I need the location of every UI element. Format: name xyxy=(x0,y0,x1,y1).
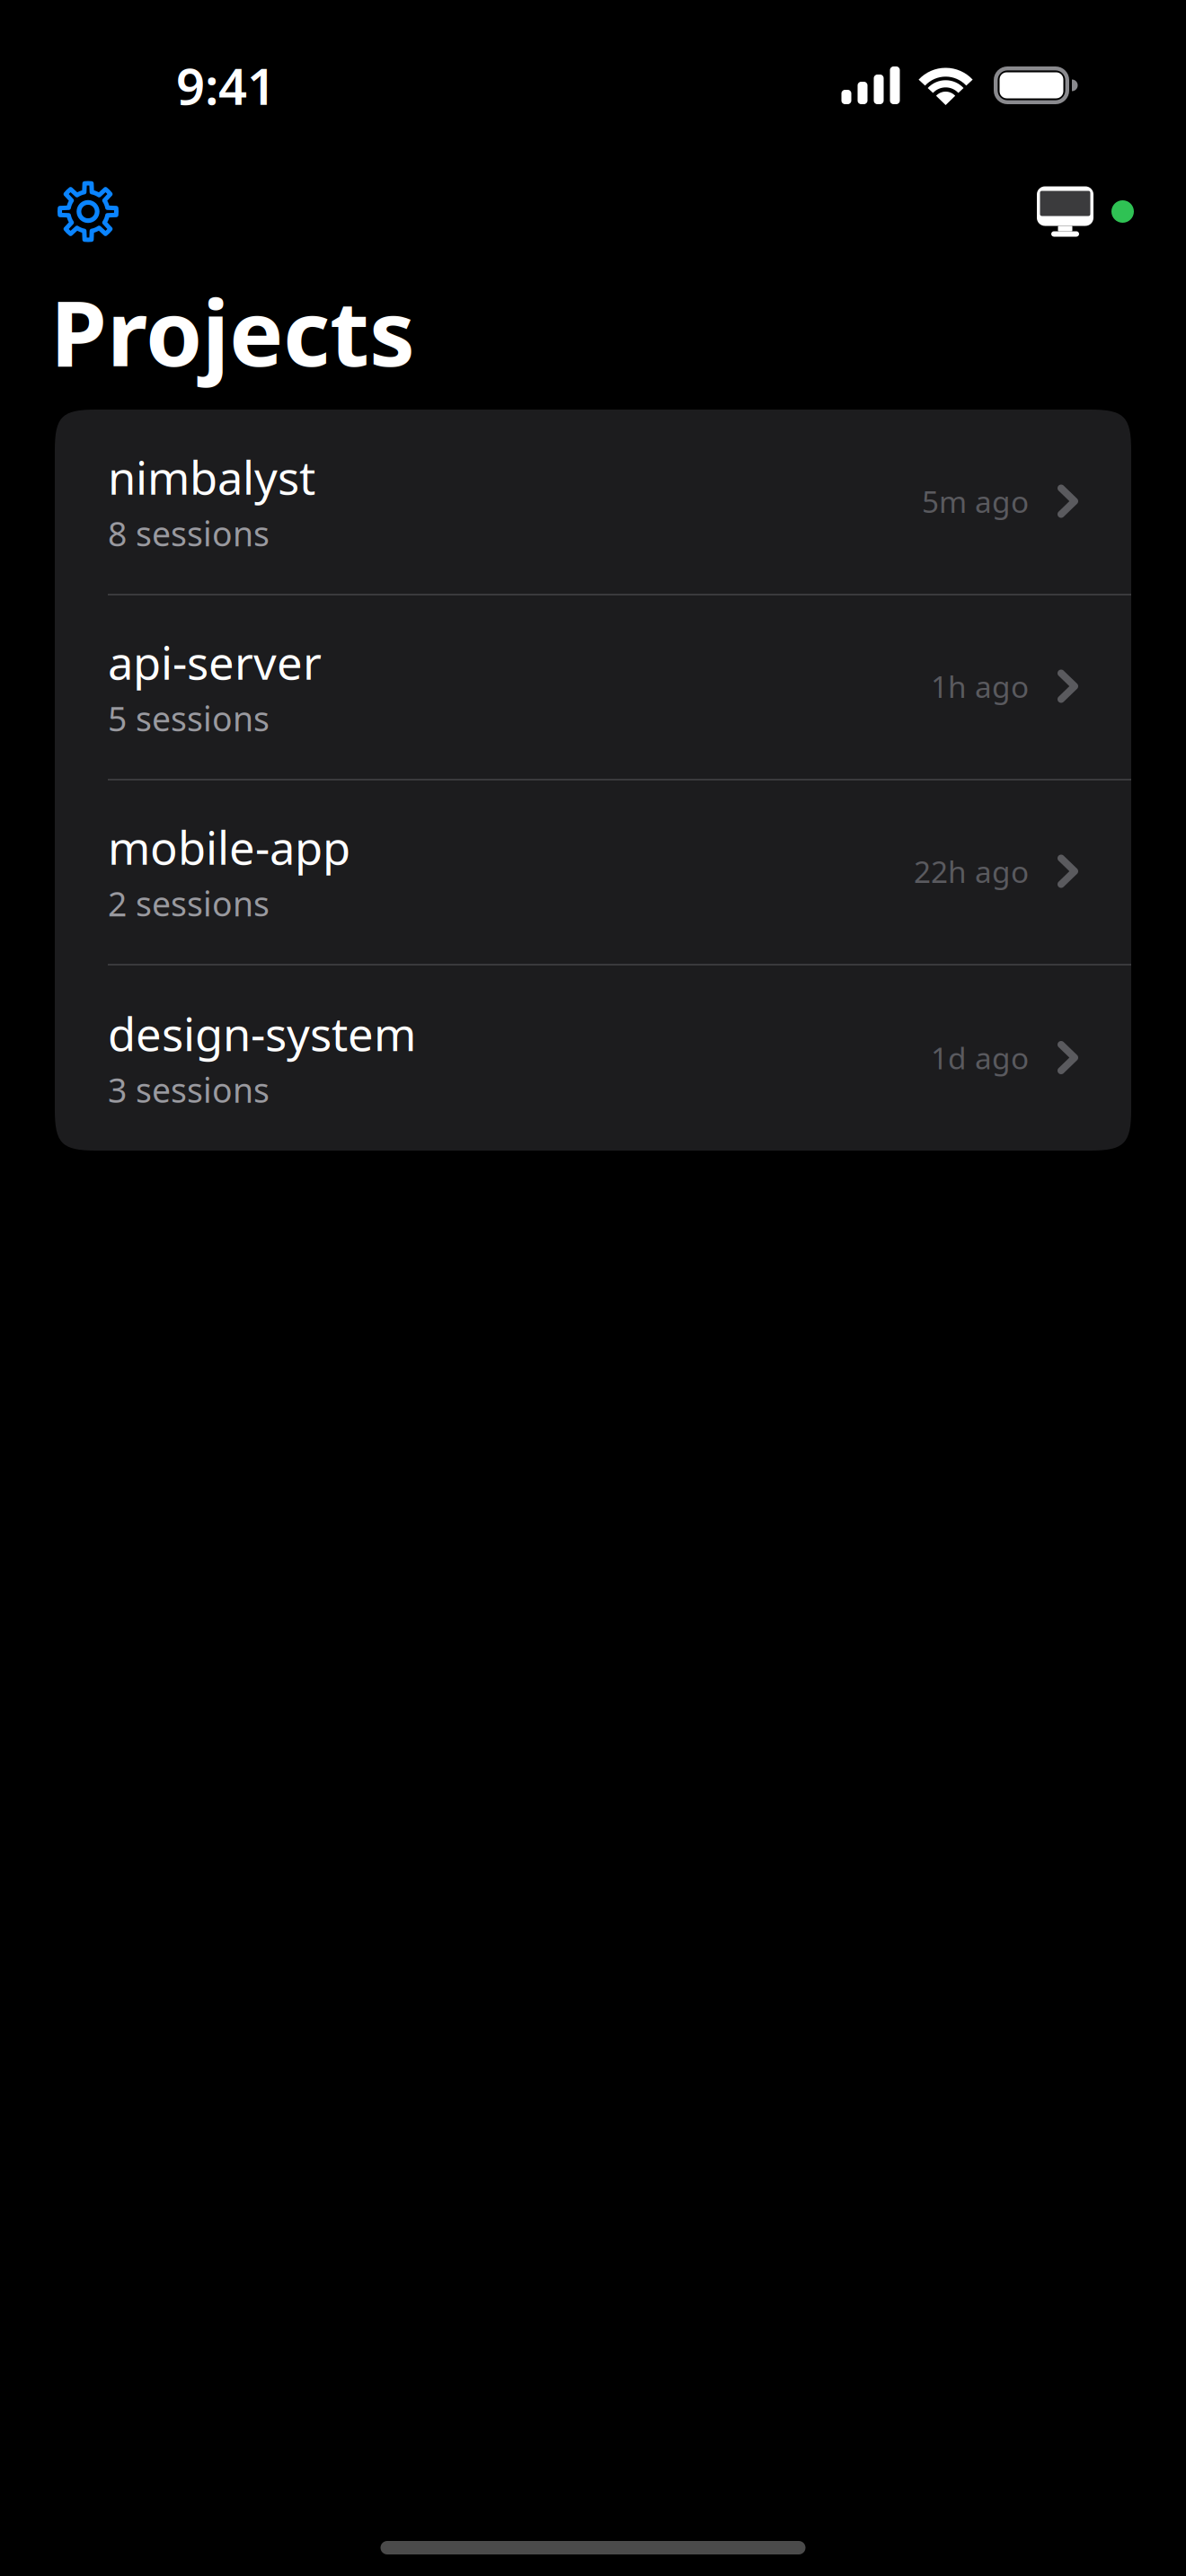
staticText: 3 sessions xyxy=(108,1067,270,1112)
staticText: nimbalyst xyxy=(108,447,315,507)
staticText: 5 sessions xyxy=(108,696,270,741)
button[interactable]: design-system xyxy=(55,965,1131,1150)
staticText: mobile-app xyxy=(108,817,350,877)
staticText: Projects xyxy=(50,271,415,391)
staticText: design-system xyxy=(108,1003,416,1064)
staticText: 5m ago xyxy=(922,481,1029,521)
staticText: 8 sessions xyxy=(108,511,270,556)
button[interactable]: nimbalyst xyxy=(55,409,1131,594)
staticText: 1h ago xyxy=(931,666,1029,706)
staticText: 1d ago xyxy=(931,1038,1029,1078)
button[interactable]: mobile-app xyxy=(55,779,1131,964)
button[interactable]: Settings xyxy=(41,165,135,258)
staticText: 9:41 xyxy=(176,52,276,119)
staticText: 2 sessions xyxy=(108,881,270,926)
staticText: api-server xyxy=(108,632,322,692)
staticText: 22h ago xyxy=(914,851,1029,891)
button[interactable]: Mac connected xyxy=(1021,170,1150,253)
button[interactable]: api-server xyxy=(55,594,1131,779)
